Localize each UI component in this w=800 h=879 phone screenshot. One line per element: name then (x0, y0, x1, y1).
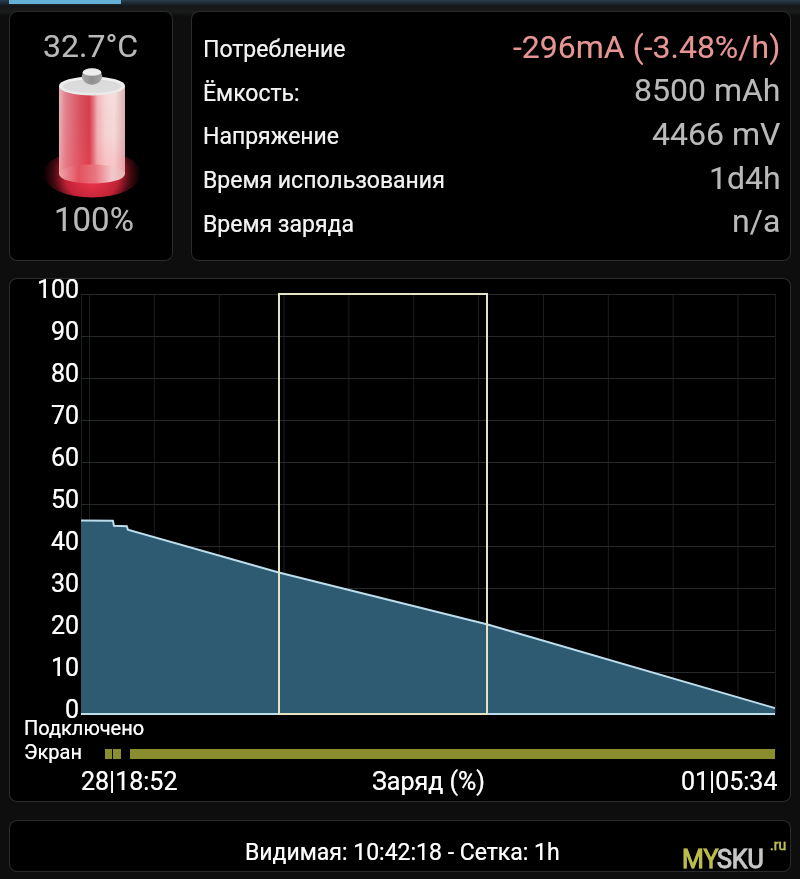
staticText: Видимая: 10:42:18 - Сетка: 1h (245, 839, 560, 866)
staticText: 8500 mAh (634, 71, 781, 109)
staticText: 28|18:52 (81, 767, 178, 796)
staticText: 100% (54, 200, 134, 239)
staticText: Потребление (203, 36, 346, 63)
staticText: 20 (51, 611, 80, 640)
staticText: 30 (51, 569, 80, 598)
staticText: 01|05:34 (681, 767, 778, 796)
staticText: Время использования (203, 167, 445, 194)
staticText: n/a (732, 202, 781, 240)
staticText: 4466 mV (652, 115, 781, 153)
staticText: Экран (24, 740, 82, 763)
staticText: Время заряда (203, 211, 354, 238)
staticText: 1d4h (709, 159, 781, 197)
staticText: 60 (51, 443, 80, 472)
staticText: 70 (51, 401, 80, 430)
staticText: Заряд (%) (372, 767, 486, 796)
staticText: 10 (51, 653, 80, 682)
staticText: SKU (717, 845, 764, 874)
staticText: MY (682, 845, 719, 874)
staticText: .ru (770, 837, 787, 853)
staticText: 90 (51, 317, 80, 346)
staticText: 32.7°C (43, 27, 139, 65)
staticText: 40 (51, 527, 80, 556)
staticText: 100 (37, 275, 80, 304)
staticText: Ёмкость: (203, 80, 300, 107)
staticText: 0 (65, 695, 80, 724)
staticText: Напряжение (203, 123, 340, 150)
other: Battery level (59, 74, 125, 186)
staticText: 50 (51, 485, 80, 514)
staticText: 80 (51, 359, 80, 388)
button[interactable]: Видимая: 10:42:18 - Сетка: 1h (9, 820, 791, 872)
staticText: -296mA (-3.48%/h) (513, 28, 781, 66)
staticText: Подключено (24, 716, 145, 739)
